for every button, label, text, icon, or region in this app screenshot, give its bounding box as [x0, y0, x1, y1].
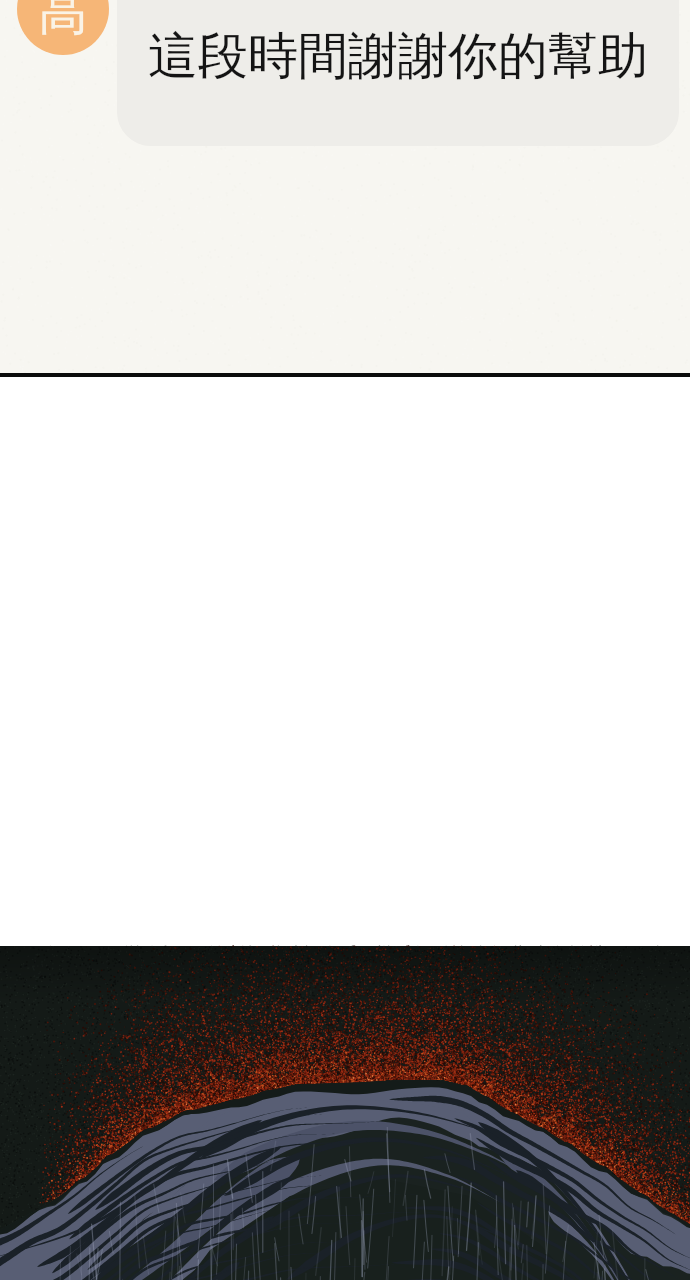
- staticText: 這段時間謝謝你的幫助: [148, 25, 648, 88]
- staticText: 高: [38, 0, 88, 44]
